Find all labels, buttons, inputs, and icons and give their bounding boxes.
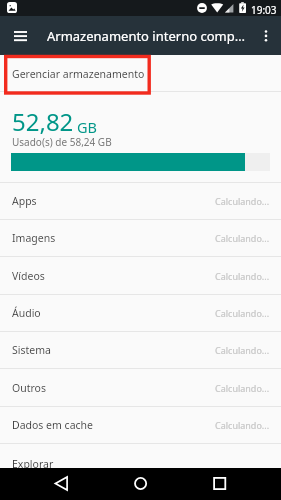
- button[interactable]: Outros: [0, 369, 281, 406]
- button[interactable]: More options: [253, 23, 279, 49]
- button[interactable]: Navigation menu: [7, 23, 33, 49]
- staticText: Calculando...: [215, 419, 270, 431]
- staticText: Vídeos: [12, 269, 45, 283]
- staticText: Apps: [12, 194, 37, 208]
- button[interactable]: Sistema: [0, 332, 281, 368]
- button[interactable]: Back: [40, 468, 84, 500]
- staticText: Calculando...: [215, 270, 270, 282]
- button[interactable]: Áudio: [0, 295, 281, 331]
- staticText: Calculando...: [215, 307, 270, 319]
- staticText: Gerenciar armazenamento: [12, 67, 145, 81]
- button[interactable]: Explorar: [0, 444, 281, 483]
- staticText: Dados em cache: [12, 418, 93, 432]
- staticText: Calculando...: [215, 344, 270, 356]
- staticText: Usado(s) de 58,24 GB: [12, 135, 112, 149]
- button[interactable]: Dados em cache: [0, 407, 281, 443]
- staticText: Calculando...: [215, 382, 270, 394]
- button[interactable]: Gerenciar armazenamento: [0, 55, 281, 91]
- staticText: Imagens: [12, 231, 56, 245]
- staticText: Explorar: [12, 457, 54, 471]
- staticText: Outros: [12, 381, 46, 395]
- staticText: Calculando...: [215, 195, 270, 207]
- button[interactable]: Home: [119, 468, 163, 500]
- button[interactable]: Apps: [0, 183, 281, 219]
- staticText: Sistema: [12, 343, 51, 357]
- button[interactable]: Vídeos: [0, 257, 281, 294]
- staticText: 52,82: [12, 105, 74, 138]
- staticText: Calculando...: [215, 232, 270, 244]
- staticText: GB: [77, 117, 97, 137]
- button[interactable]: Imagens: [0, 220, 281, 256]
- staticText: Áudio: [12, 306, 41, 320]
- button[interactable]: Recent apps: [198, 468, 242, 500]
- staticText: 19:03: [251, 3, 277, 17]
- staticText: Armazenamento interno comp…: [47, 27, 245, 45]
